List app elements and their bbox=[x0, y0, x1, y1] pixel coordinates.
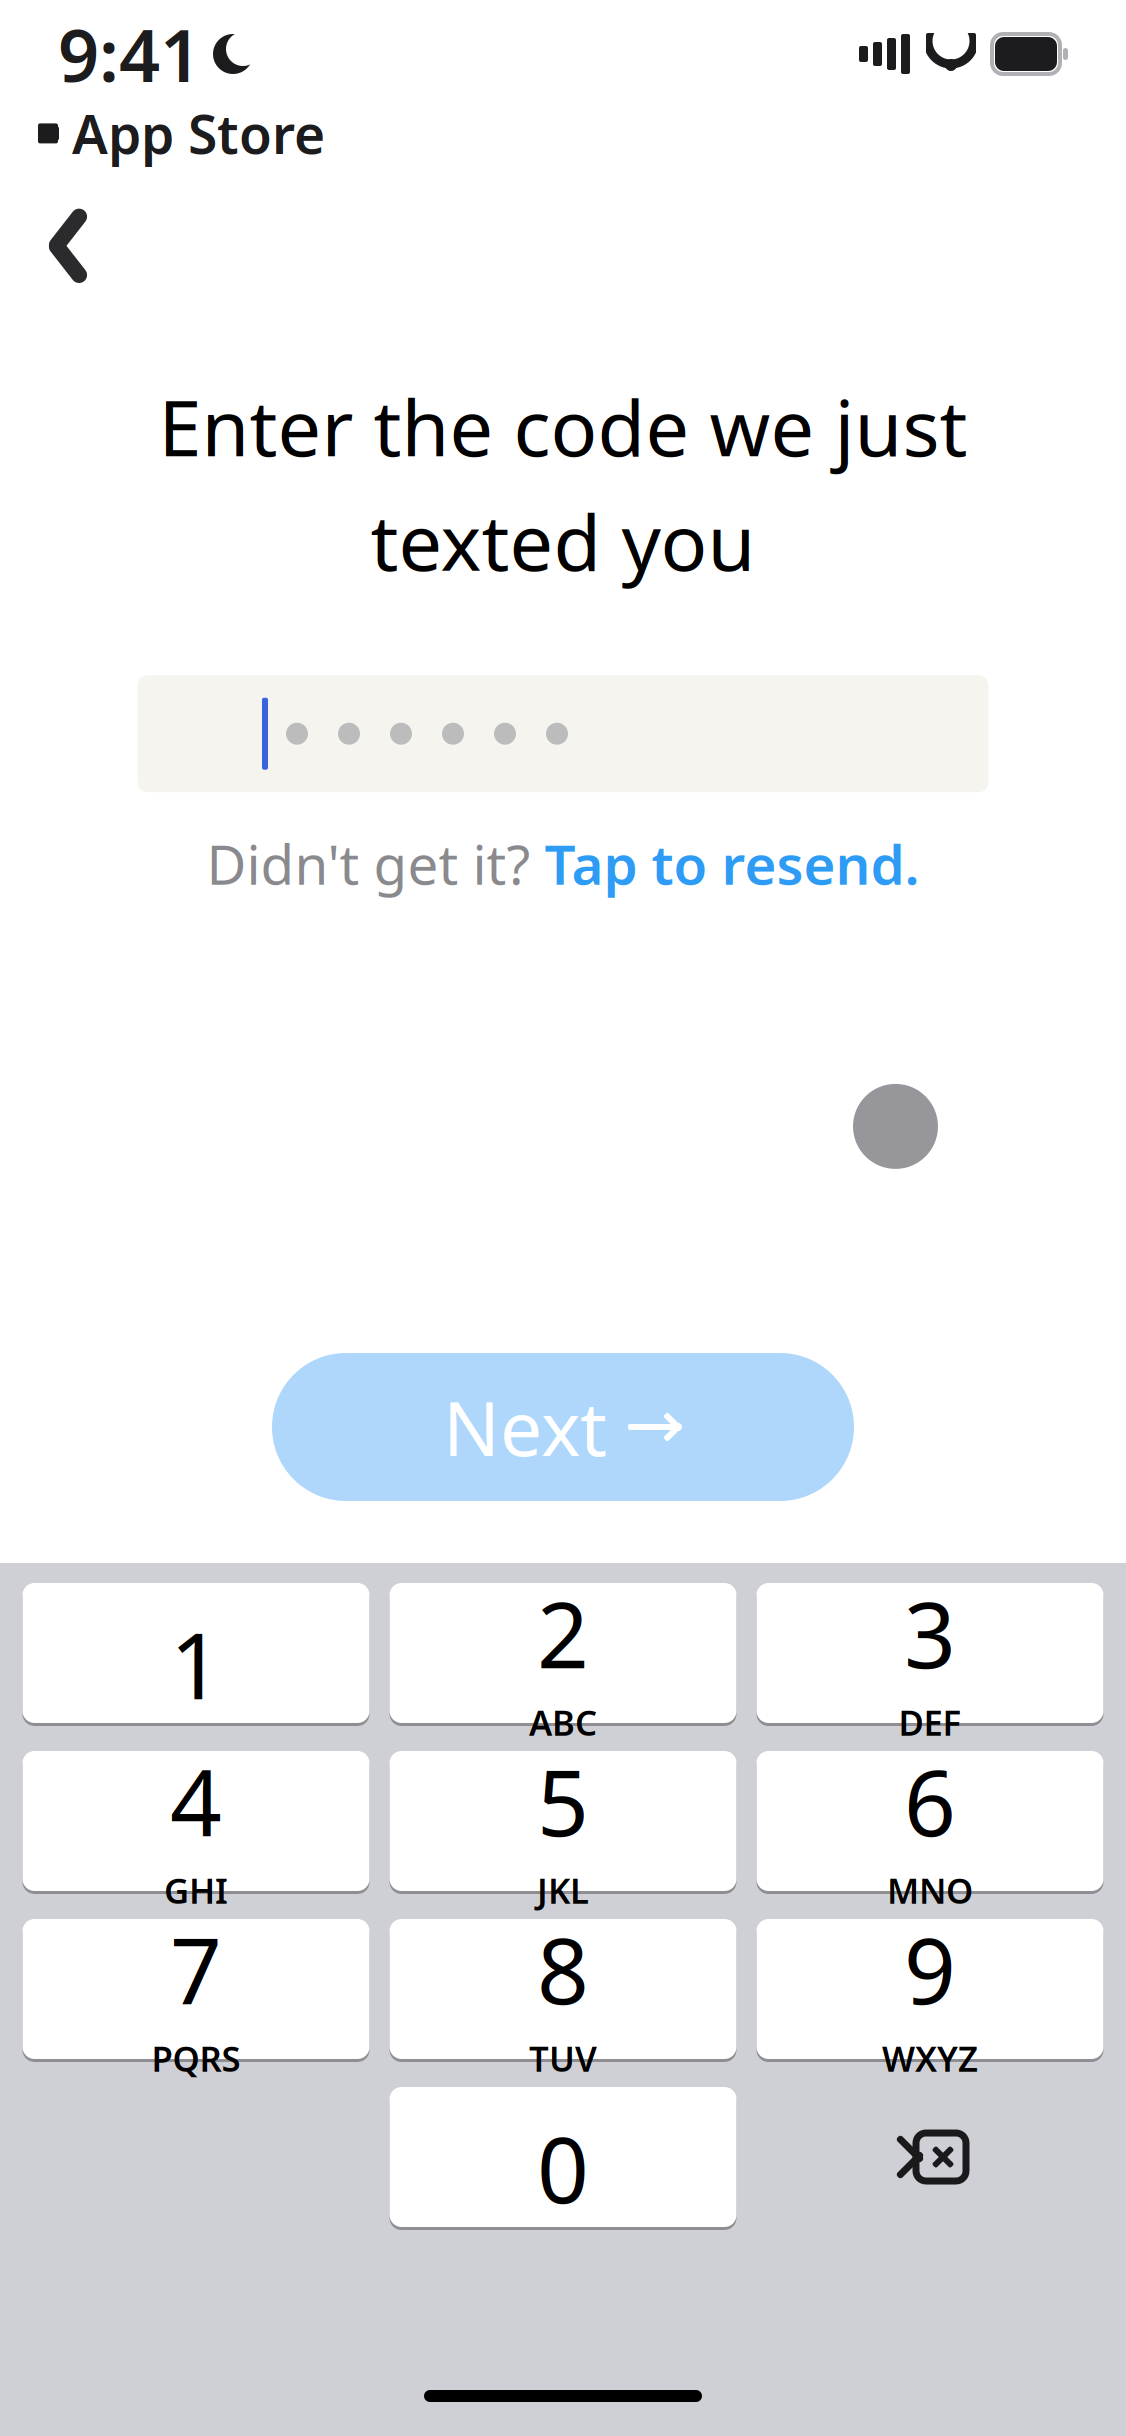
staticText: 5 bbox=[537, 1741, 589, 1861]
staticText: 6 bbox=[904, 1741, 956, 1861]
button[interactable]: 5 bbox=[389, 1748, 736, 1894]
staticText: Next bbox=[443, 1377, 607, 1477]
button[interactable]: 9 bbox=[756, 1916, 1103, 2062]
button[interactable]: 4 bbox=[22, 1748, 369, 1894]
button[interactable]: Tap to resend. bbox=[544, 827, 919, 900]
button[interactable]: Delete bbox=[756, 2087, 1103, 2227]
staticText: TUV bbox=[529, 2035, 597, 2081]
staticText: MNO bbox=[887, 1867, 973, 1913]
staticText: Didn't get it? bbox=[206, 827, 544, 900]
staticText: 8 bbox=[537, 1909, 589, 2029]
staticText: PQRS bbox=[151, 2035, 240, 2081]
button[interactable]: 8 bbox=[389, 1916, 736, 2062]
staticText: DEF bbox=[898, 1699, 961, 1745]
button[interactable]: 0 bbox=[389, 2084, 736, 2230]
staticText: ABC bbox=[529, 1699, 597, 1745]
staticText: 9 bbox=[904, 1909, 956, 2029]
button[interactable]: Verification code field bbox=[137, 675, 988, 792]
staticText: 9:41 bbox=[58, 6, 201, 102]
staticText: 4 bbox=[170, 1741, 222, 1861]
button[interactable]: Back bbox=[8, 191, 128, 301]
button[interactable]: 3 bbox=[756, 1580, 1103, 1726]
staticText: WXYZ bbox=[882, 2035, 978, 2081]
button[interactable]: 1 bbox=[22, 1580, 369, 1726]
staticText: Tap to resend. bbox=[544, 827, 919, 900]
staticText: 7 bbox=[170, 1909, 222, 2029]
button[interactable]: Next bbox=[272, 1353, 854, 1501]
button[interactable]: 6 bbox=[756, 1748, 1103, 1894]
button[interactable]: 2 bbox=[389, 1580, 736, 1726]
button[interactable]: 7 bbox=[22, 1916, 369, 2062]
staticText: JKL bbox=[537, 1867, 589, 1913]
staticText: 3 bbox=[904, 1573, 956, 1693]
staticText: Enter the code we just bbox=[158, 375, 967, 477]
staticText: GHI bbox=[164, 1867, 228, 1913]
staticText: texted you bbox=[370, 489, 755, 592]
staticText: 1 bbox=[170, 1604, 222, 1724]
staticText: 0 bbox=[537, 2108, 589, 2228]
staticText: 2 bbox=[537, 1573, 589, 1693]
staticText: App Store bbox=[72, 98, 325, 169]
